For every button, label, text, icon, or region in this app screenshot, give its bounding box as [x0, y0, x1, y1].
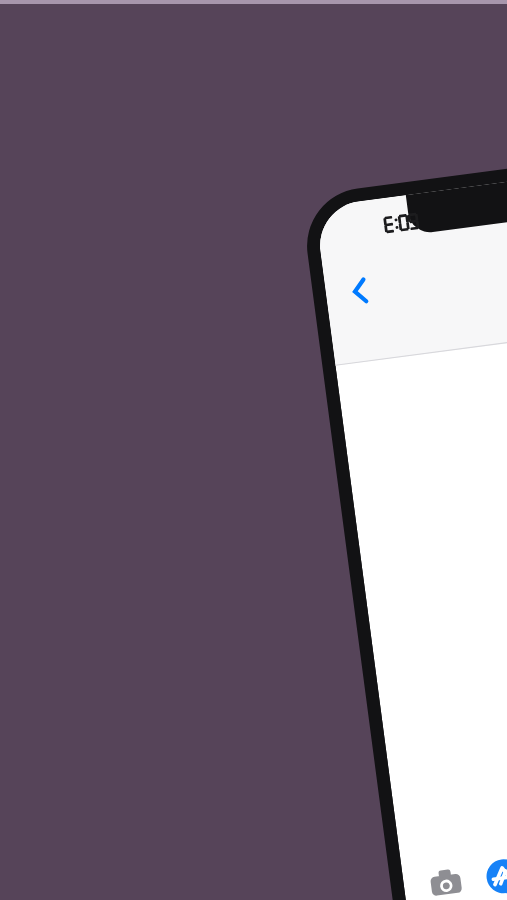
- button[interactable]: iMessage phone mockup: [0, 0, 507, 900]
